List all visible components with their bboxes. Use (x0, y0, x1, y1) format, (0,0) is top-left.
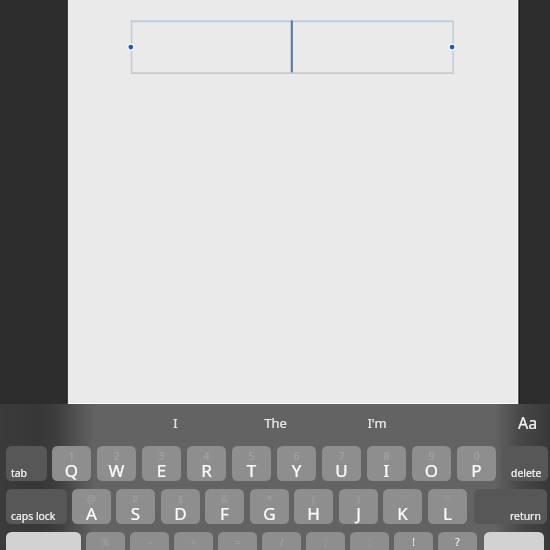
button[interactable]: H (294, 489, 333, 524)
staticText: tab (11, 466, 27, 480)
staticText: delete (511, 466, 542, 480)
button[interactable]: I (367, 446, 406, 481)
button[interactable]: M (350, 532, 389, 550)
staticText: I (173, 414, 178, 432)
button[interactable]: Q (52, 446, 91, 481)
staticText: P (457, 459, 496, 481)
button[interactable]: . (438, 532, 477, 550)
staticText: . (438, 545, 477, 550)
staticText: J (339, 502, 378, 524)
staticText: H (294, 502, 333, 524)
button[interactable]: The (225, 409, 325, 436)
staticText: K (383, 502, 422, 524)
button[interactable]: return (474, 489, 547, 524)
button[interactable]: F (205, 489, 244, 524)
button[interactable]: I (125, 409, 225, 436)
staticText: A (72, 502, 111, 524)
button[interactable]: U (322, 446, 361, 481)
staticText: F (205, 502, 244, 524)
staticText: 0 (457, 449, 496, 463)
staticText: ? (438, 535, 477, 549)
staticText: caps lock (11, 509, 56, 523)
button[interactable]: Z (86, 532, 125, 550)
staticText: I (367, 459, 406, 481)
staticText: E (142, 459, 181, 481)
button[interactable]: O (412, 446, 451, 481)
button[interactable]: S (116, 489, 155, 524)
staticText: 8 (367, 449, 406, 463)
button[interactable]: J (339, 489, 378, 524)
staticText: 9 (412, 449, 451, 463)
button[interactable]: T (232, 446, 271, 481)
staticText: @ (72, 492, 111, 506)
staticText: S (116, 502, 155, 524)
button[interactable]: G (250, 489, 289, 524)
staticText: W (97, 459, 136, 481)
staticText: L (428, 502, 467, 524)
staticText: 4 (187, 449, 226, 463)
button[interactable]: A (72, 489, 111, 524)
staticText: , (394, 545, 433, 550)
button[interactable]: W (97, 446, 136, 481)
staticText: 3 (142, 449, 181, 463)
button[interactable]: Text formatting (507, 409, 549, 436)
button[interactable]: , (394, 532, 433, 550)
button[interactable]: C (174, 532, 213, 550)
staticText: ! (394, 535, 433, 549)
button[interactable]: delete (502, 446, 548, 481)
staticText: U (322, 459, 361, 481)
button[interactable]: V (218, 532, 257, 550)
button[interactable]: N (306, 532, 345, 550)
staticText: Q (52, 459, 91, 481)
button[interactable]: P (457, 446, 496, 481)
staticText: return (510, 509, 541, 523)
button[interactable]: tab (6, 446, 47, 481)
button[interactable]: caps lock (6, 489, 67, 524)
button[interactable]: shift (6, 532, 81, 550)
button[interactable]: K (383, 489, 422, 524)
staticText: R (187, 459, 226, 481)
staticText: Aa (518, 412, 538, 434)
staticText: I'm (367, 414, 387, 432)
staticText: Y (277, 459, 316, 481)
button[interactable]: E (142, 446, 181, 481)
staticText: D (161, 502, 200, 524)
staticText: 5 (232, 449, 271, 463)
button[interactable]: L (428, 489, 467, 524)
button[interactable]: D (161, 489, 200, 524)
button[interactable]: R (187, 446, 226, 481)
staticText: 6 (277, 449, 316, 463)
button[interactable]: Y (277, 446, 316, 481)
staticText: G (250, 502, 289, 524)
button[interactable]: B (262, 532, 301, 550)
button[interactable]: shift (484, 532, 544, 550)
button[interactable]: X (130, 532, 169, 550)
staticText: T (232, 459, 271, 481)
button[interactable]: I'm (327, 409, 427, 436)
staticText: 2 (97, 449, 136, 463)
